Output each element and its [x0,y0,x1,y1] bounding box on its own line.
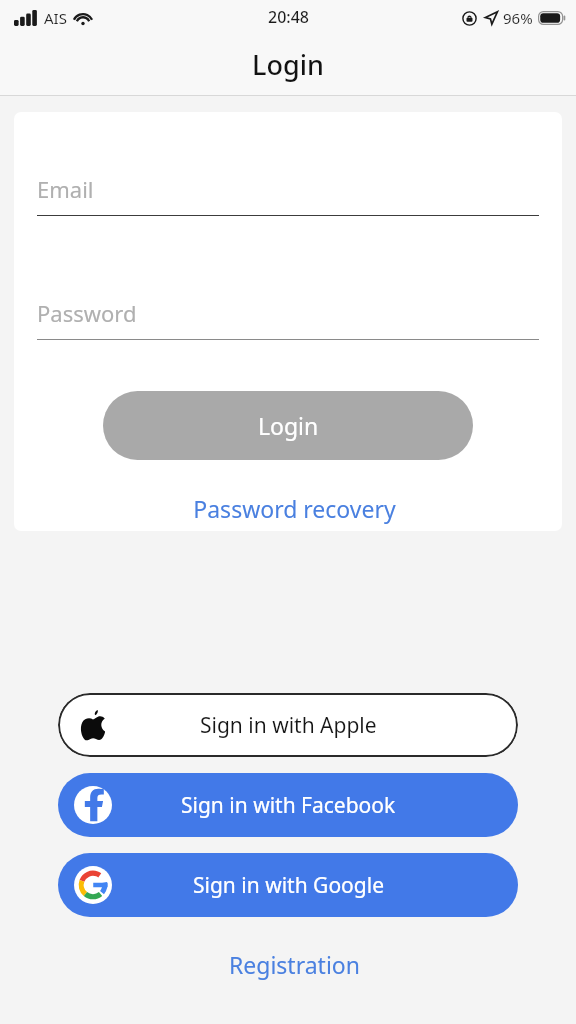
staticText: AIS [44,8,67,28]
button[interactable]: Password recovery [14,493,562,524]
button[interactable]: Sign in with Facebook [58,773,518,837]
staticText: Login [252,46,324,83]
staticText: 20:48 [268,6,309,28]
staticText: Password [37,298,137,328]
staticText: Registration [229,949,360,980]
staticText: Email [37,174,94,204]
button[interactable]: Sign in with Google [58,853,518,917]
button[interactable]: Password [37,298,539,340]
button[interactable]: Email [37,174,539,216]
staticText: Sign in with Google [193,871,384,900]
staticText: Sign in with Apple [200,711,377,740]
staticText: Password recovery [193,493,396,524]
staticText: Login [258,410,319,441]
button[interactable]: Registration [58,949,518,980]
button[interactable]: Sign in with Apple [58,693,518,757]
staticText: Sign in with Facebook [181,791,396,820]
staticText: 96% [503,8,533,28]
button[interactable]: Login [103,391,473,460]
